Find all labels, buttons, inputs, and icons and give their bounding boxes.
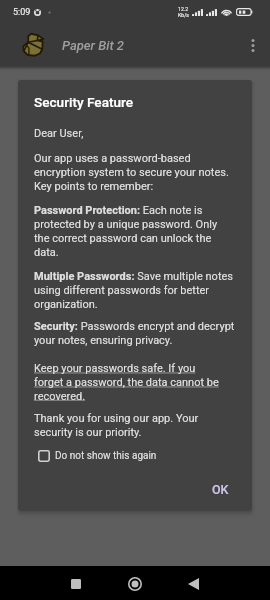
button[interactable]: Recents: [46, 567, 105, 600]
staticText: Security Feature: [34, 94, 134, 110]
staticText: Password Protection: Each note is protec…: [34, 204, 235, 258]
staticText: Paper Bit 2: [62, 38, 125, 53]
staticText: Keep your passwords safe. If you forget …: [34, 362, 219, 402]
button[interactable]: OK: [206, 479, 235, 500]
staticText: 12.2: [178, 6, 189, 12]
staticText: Our app uses a password-based encryption…: [34, 152, 235, 192]
staticText: Do not show this again: [55, 450, 157, 462]
staticText: Dear User,: [34, 127, 84, 140]
staticText: Security: Passwords encrypt and decrypt …: [34, 320, 235, 346]
staticText: 5:09: [13, 7, 31, 18]
button[interactable]: More options: [236, 28, 270, 62]
staticText: Kb/s: [178, 12, 189, 18]
staticText: OK: [212, 482, 229, 497]
button[interactable]: Back: [164, 567, 223, 600]
staticText: Thank you for using our app. Your securi…: [34, 412, 235, 438]
staticText: Multiple Passwords: Save multiple notes …: [34, 270, 235, 310]
button[interactable]: Do not show this again: [34, 448, 157, 464]
button[interactable]: Home: [105, 567, 164, 600]
